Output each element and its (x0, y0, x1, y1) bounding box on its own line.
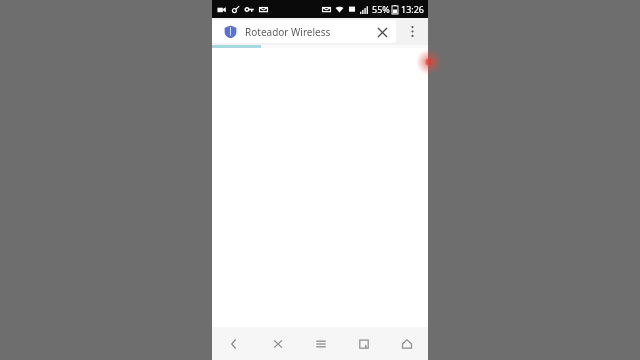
button[interactable]: Home (385, 327, 428, 360)
staticText: Roteador Wireless (245, 25, 372, 39)
staticText: 55% (372, 3, 390, 15)
button[interactable]: Menu (299, 327, 342, 360)
button[interactable]: More options (396, 18, 428, 45)
button[interactable]: Back (212, 327, 256, 360)
button[interactable]: Tabs (342, 327, 385, 360)
button[interactable]: Roteador Wireless (212, 20, 396, 43)
staticText: 13:26 (401, 3, 425, 15)
button[interactable]: Close (256, 327, 299, 360)
button[interactable]: Stop loading (372, 22, 392, 42)
